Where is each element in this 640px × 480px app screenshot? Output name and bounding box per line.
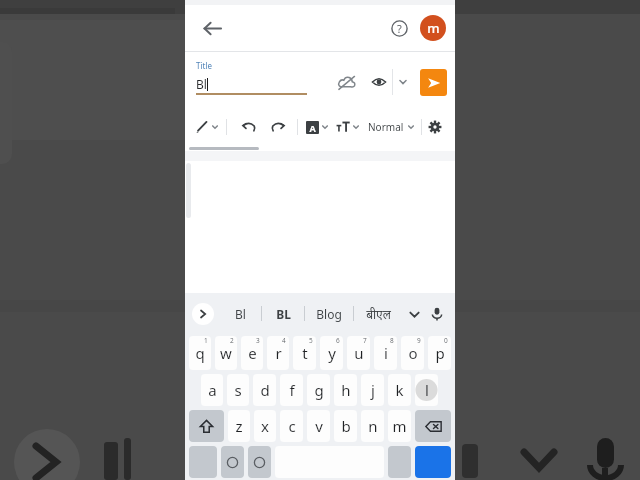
staticText: l xyxy=(425,380,429,400)
staticText: q xyxy=(195,343,205,363)
button[interactable]: i xyxy=(374,336,397,370)
button[interactable]: l xyxy=(415,374,438,406)
button[interactable]: Publish xyxy=(420,69,447,96)
button[interactable]: Font size xyxy=(336,112,359,142)
staticText: j xyxy=(371,380,375,400)
staticText: ? xyxy=(397,21,402,36)
staticText: a xyxy=(208,380,217,400)
button[interactable]: t xyxy=(293,336,316,370)
button[interactable]: n xyxy=(361,410,384,442)
staticText: c xyxy=(288,416,296,436)
button[interactable]: u xyxy=(347,336,370,370)
staticText: i xyxy=(384,343,388,363)
staticText: h xyxy=(341,380,351,400)
staticText: Bl xyxy=(196,76,207,92)
staticText: v xyxy=(315,416,323,436)
staticText: A xyxy=(309,122,316,134)
button[interactable]: More preview options xyxy=(393,69,413,95)
button[interactable]: More suggestions xyxy=(402,299,426,329)
button[interactable]: Voice input xyxy=(426,299,448,329)
button[interactable]: d xyxy=(253,374,276,406)
button[interactable]: w xyxy=(215,336,237,370)
button[interactable]: v xyxy=(307,410,330,442)
staticText: r xyxy=(275,343,282,363)
button[interactable]: k xyxy=(388,374,411,406)
staticText: s xyxy=(234,380,242,400)
button[interactable]: m xyxy=(388,410,411,442)
staticText: बीएल xyxy=(366,306,391,322)
button[interactable]: b xyxy=(334,410,357,442)
staticText: t xyxy=(302,343,308,363)
button[interactable]: Expand toolbar xyxy=(192,303,214,325)
button[interactable]: x xyxy=(254,410,276,442)
staticText: f xyxy=(289,380,295,400)
staticText: y xyxy=(328,343,336,363)
button[interactable]: बीएल xyxy=(354,298,402,330)
staticText: 5 xyxy=(309,336,313,345)
staticText: 9 xyxy=(417,336,421,345)
staticText: 4 xyxy=(282,336,286,345)
staticText: w xyxy=(220,343,232,363)
button[interactable]: z xyxy=(228,410,250,442)
button[interactable]: Redo xyxy=(266,115,290,139)
button[interactable]: p xyxy=(428,336,451,370)
button[interactable]: Offline draft xyxy=(331,67,361,97)
button[interactable]: Paragraph style Normal xyxy=(368,112,414,142)
button[interactable]: Emoji xyxy=(221,446,244,478)
button[interactable]: e xyxy=(241,336,263,370)
staticText: 8 xyxy=(390,336,394,345)
staticText: 1 xyxy=(204,336,208,345)
staticText: Bl xyxy=(235,306,246,322)
button[interactable]: Symbols xyxy=(189,446,217,478)
staticText: 7 xyxy=(363,336,367,345)
button[interactable]: Bl xyxy=(220,298,261,330)
staticText: z xyxy=(235,416,243,436)
staticText: BL xyxy=(276,306,291,322)
button[interactable]: Enter xyxy=(415,446,451,478)
staticText: 0 xyxy=(444,336,448,345)
staticText: e xyxy=(248,343,257,363)
staticText: m xyxy=(427,19,440,37)
button[interactable]: Backspace xyxy=(415,410,451,442)
button[interactable]: Preview xyxy=(365,69,392,95)
staticText: 6 xyxy=(336,336,340,345)
staticText: n xyxy=(368,416,378,436)
staticText: b xyxy=(341,416,351,436)
staticText: m xyxy=(392,416,407,436)
button[interactable]: Text color xyxy=(306,112,328,142)
button[interactable]: Help xyxy=(383,12,415,44)
button[interactable]: Period xyxy=(388,446,411,478)
button[interactable]: Shift xyxy=(189,410,224,442)
staticText: p xyxy=(435,343,445,363)
staticText: Title xyxy=(196,60,212,71)
button[interactable]: Blog xyxy=(305,298,353,330)
button[interactable]: y xyxy=(320,336,343,370)
button[interactable]: c xyxy=(280,410,303,442)
staticText: u xyxy=(354,343,364,363)
button[interactable]: h xyxy=(334,374,357,406)
button[interactable]: Text format xyxy=(195,112,218,142)
staticText: x xyxy=(261,416,269,436)
staticText: g xyxy=(314,380,324,400)
button[interactable]: g xyxy=(307,374,330,406)
button[interactable]: q xyxy=(189,336,211,370)
button[interactable]: r xyxy=(267,336,289,370)
button[interactable]: a xyxy=(201,374,223,406)
staticText: 3 xyxy=(256,336,260,345)
button[interactable]: Account xyxy=(420,15,446,41)
staticText: Blog xyxy=(316,306,342,322)
button[interactable]: Undo xyxy=(236,115,260,139)
button[interactable]: BL xyxy=(262,298,304,330)
button[interactable]: f xyxy=(280,374,303,406)
button[interactable]: Settings xyxy=(422,114,447,140)
staticText: o xyxy=(408,343,418,363)
button[interactable]: o xyxy=(401,336,424,370)
button[interactable]: Back xyxy=(195,11,229,45)
button[interactable]: s xyxy=(227,374,249,406)
button[interactable]: Bl xyxy=(196,74,305,92)
staticText: k xyxy=(395,380,404,400)
button[interactable]: Language xyxy=(248,446,271,478)
staticText: 2 xyxy=(230,336,234,345)
button[interactable]: j xyxy=(361,374,384,406)
